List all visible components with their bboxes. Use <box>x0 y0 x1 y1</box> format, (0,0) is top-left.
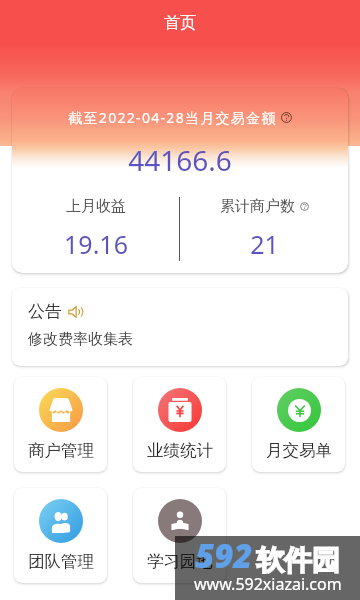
staticText: 软件园 <box>256 543 340 578</box>
button[interactable]: 公告 <box>12 288 348 366</box>
staticText: 19.16 <box>64 227 128 261</box>
button[interactable]: 商户管理 <box>14 377 107 472</box>
staticText: 44166.6 <box>128 141 232 179</box>
staticText: 592 <box>195 533 253 578</box>
button[interactable]: 学习园地 <box>133 488 226 583</box>
staticText: 累计商户数 <box>220 197 295 216</box>
button[interactable]: 团队管理 <box>14 488 107 583</box>
button[interactable]: 业绩统计 <box>133 377 226 472</box>
other: 公告 <box>68 305 82 319</box>
staticText: www.592xiazai.com <box>194 573 342 595</box>
staticText: 商户管理 <box>28 440 94 461</box>
staticText: 21 <box>250 227 279 261</box>
button[interactable]: 月交易单 <box>252 377 345 472</box>
staticText: 公告 <box>28 301 62 322</box>
staticText: 团队管理 <box>28 551 94 572</box>
staticText: 上月收益 <box>66 197 126 216</box>
staticText: 月交易单 <box>266 440 332 461</box>
staticText: 学习园地 <box>147 551 213 572</box>
staticText: 截至2022-04-28当月交易金额 <box>68 108 277 127</box>
staticText: 修改费率收集表 <box>28 330 133 349</box>
staticText: 首页 <box>164 13 196 33</box>
staticText: 业绩统计 <box>147 440 213 461</box>
